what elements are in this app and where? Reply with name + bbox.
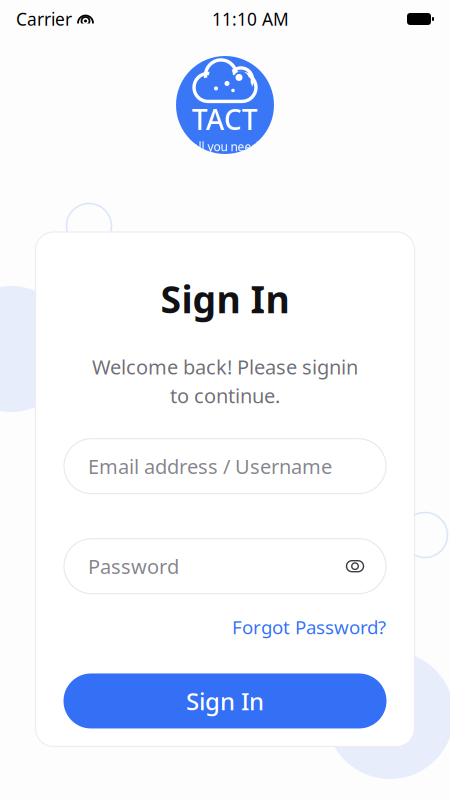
staticText: 11:10 AM xyxy=(212,7,289,30)
staticText: Carrier xyxy=(16,7,72,30)
staticText: Sign In xyxy=(160,274,289,324)
staticText: Forgot Password? xyxy=(232,615,386,639)
staticText: all you need xyxy=(191,139,258,154)
staticText: Email address / Username xyxy=(88,453,332,479)
button[interactable]: Forgot Password? xyxy=(232,615,386,639)
staticText xyxy=(72,7,77,30)
staticText: to continue. xyxy=(170,382,280,409)
button[interactable]: Sign In xyxy=(63,673,386,728)
staticText: Welcome back! Please signin xyxy=(92,354,358,380)
button[interactable]: Email address / Username xyxy=(64,439,386,494)
staticText: TACT xyxy=(192,100,258,138)
staticText: Password xyxy=(88,553,179,579)
staticText: Sign In xyxy=(186,685,264,717)
button[interactable]: Password xyxy=(64,539,386,594)
